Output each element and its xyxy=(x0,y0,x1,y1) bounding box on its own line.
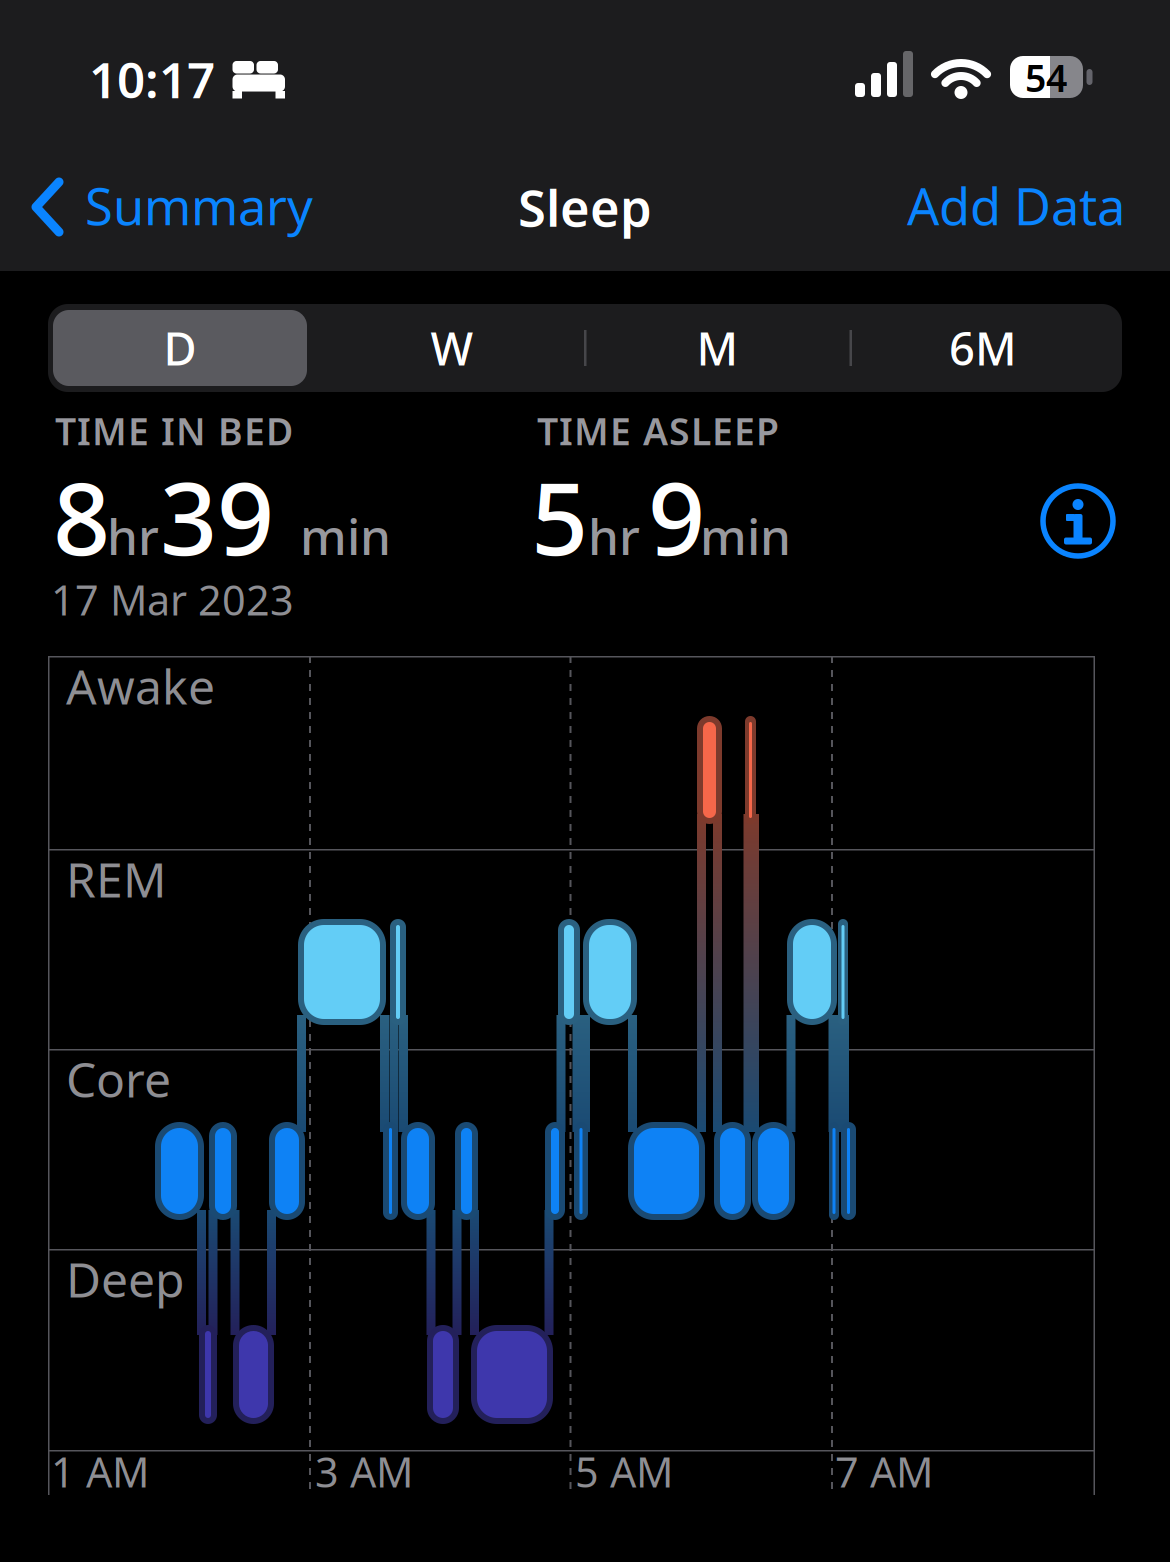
button[interactable]: W xyxy=(319,304,584,392)
staticText: TIME ASLEEP xyxy=(537,406,779,456)
staticText: min xyxy=(300,503,391,568)
button[interactable]: About Sleep xyxy=(1043,486,1113,556)
staticText: 5 xyxy=(531,450,588,583)
staticText: Add Data xyxy=(907,172,1125,239)
staticText: Deep xyxy=(66,1247,185,1311)
button[interactable]: M xyxy=(585,304,850,392)
staticText: 10:17 xyxy=(89,46,215,112)
button[interactable]: Summary xyxy=(30,177,258,244)
staticText: D xyxy=(163,318,196,378)
staticText: hr xyxy=(107,503,159,568)
staticText: 6M xyxy=(949,318,1017,378)
staticText: 8 xyxy=(53,450,110,583)
staticText: Core xyxy=(66,1047,171,1111)
staticText: 3 AM xyxy=(315,1444,413,1499)
staticText: 39 xyxy=(160,450,274,583)
staticText: Sleep xyxy=(518,173,652,241)
staticText: M xyxy=(696,318,738,378)
staticText: Summary xyxy=(85,172,313,239)
staticText: 1 AM xyxy=(51,1444,149,1499)
staticText: REM xyxy=(66,847,167,911)
staticText: 17 Mar 2023 xyxy=(51,572,294,627)
staticText: hr xyxy=(588,503,640,568)
staticText: 54 xyxy=(1025,53,1067,102)
button[interactable]: D xyxy=(47,304,312,392)
staticText: 7 AM xyxy=(835,1444,933,1499)
button[interactable]: Add Data xyxy=(907,172,1125,239)
staticText: TIME IN BED xyxy=(55,406,293,456)
staticText: Awake xyxy=(66,654,215,718)
staticText: min xyxy=(700,503,791,568)
button[interactable]: 6M xyxy=(850,304,1115,392)
staticText: W xyxy=(430,318,473,378)
staticText: 5 AM xyxy=(575,1444,673,1499)
staticText: 9 xyxy=(648,450,705,583)
